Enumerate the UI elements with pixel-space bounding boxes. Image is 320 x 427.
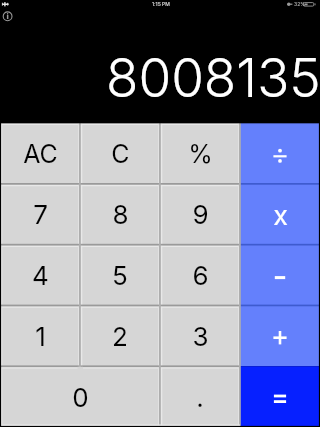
staticText: 0 bbox=[72, 382, 89, 413]
button[interactable]: Subtract bbox=[240, 245, 320, 306]
button[interactable]: 7 bbox=[0, 184, 80, 245]
staticText: 8008135 bbox=[106, 46, 320, 110]
staticText: 6 bbox=[192, 260, 209, 291]
button[interactable]: C bbox=[80, 123, 160, 184]
button[interactable]: 3 bbox=[160, 306, 240, 367]
button[interactable]: 5 bbox=[80, 245, 160, 306]
staticText: x bbox=[273, 199, 288, 232]
staticText: 4 bbox=[32, 260, 49, 291]
button[interactable]: 1 bbox=[0, 306, 80, 367]
staticText: % bbox=[188, 139, 213, 169]
staticText: AC bbox=[23, 139, 58, 169]
button[interactable]: AC bbox=[0, 123, 80, 184]
staticText: 5 bbox=[112, 260, 128, 291]
staticText: 2 bbox=[112, 321, 128, 352]
button[interactable]: 4 bbox=[0, 245, 80, 306]
button[interactable]: Multiply bbox=[240, 184, 320, 245]
staticText: 3 bbox=[192, 321, 209, 352]
button[interactable]: . bbox=[160, 367, 240, 427]
staticText: 32% bbox=[294, 1, 306, 7]
button[interactable]: % bbox=[160, 123, 240, 184]
button[interactable]: 6 bbox=[160, 245, 240, 306]
button[interactable]: 8 bbox=[80, 184, 160, 245]
staticText: 1 bbox=[35, 321, 46, 352]
button[interactable]: 2 bbox=[80, 306, 160, 367]
staticText: . bbox=[196, 382, 204, 413]
button[interactable]: Divide bbox=[240, 123, 320, 184]
button[interactable]: Equals bbox=[240, 367, 320, 427]
staticText: C bbox=[111, 139, 130, 169]
staticText: 7 bbox=[33, 199, 48, 230]
staticText: 9 bbox=[192, 199, 209, 230]
button[interactable]: 0 bbox=[0, 367, 160, 427]
staticText: 8 bbox=[112, 199, 129, 230]
button[interactable]: Add bbox=[240, 306, 320, 367]
button[interactable]: 9 bbox=[160, 184, 240, 245]
staticText: 1:15 PM bbox=[152, 1, 170, 7]
